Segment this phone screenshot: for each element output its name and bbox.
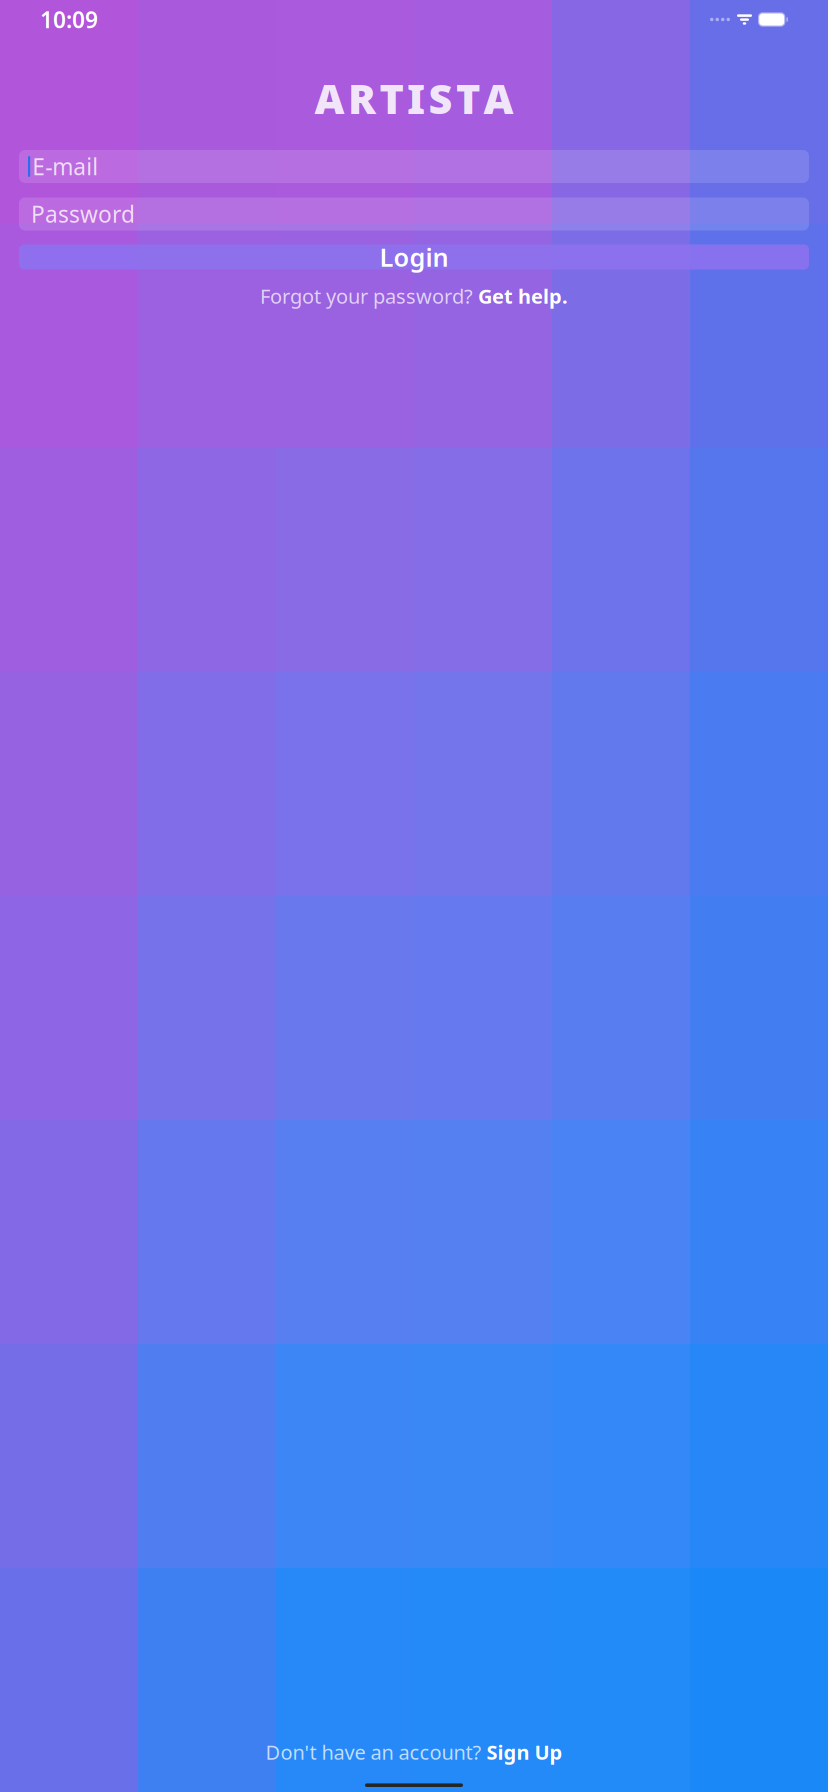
staticText: E-mail: [32, 151, 98, 181]
staticText: Forgot your password?: [260, 283, 478, 309]
staticText: Don't have an account?: [265, 1739, 486, 1765]
button[interactable]: E-mail: [19, 150, 809, 183]
button[interactable]: Don't have an account?: [265, 1741, 562, 1762]
staticText: S: [428, 71, 452, 125]
button[interactable]: Login: [19, 244, 809, 269]
staticText: Login: [379, 240, 448, 274]
staticText: R: [348, 71, 376, 125]
staticText: Sign Up: [486, 1739, 562, 1765]
staticText: Get help.: [478, 283, 568, 309]
staticText: I: [407, 71, 425, 125]
button[interactable]: Password: [19, 197, 809, 230]
staticText: T: [379, 71, 403, 125]
button[interactable]: Forgot your password?: [260, 285, 568, 306]
staticText: T: [456, 71, 480, 125]
staticText: 10:09: [40, 4, 98, 34]
staticText: Password: [31, 199, 135, 229]
staticText: A: [314, 71, 344, 125]
staticText: A: [483, 71, 513, 125]
